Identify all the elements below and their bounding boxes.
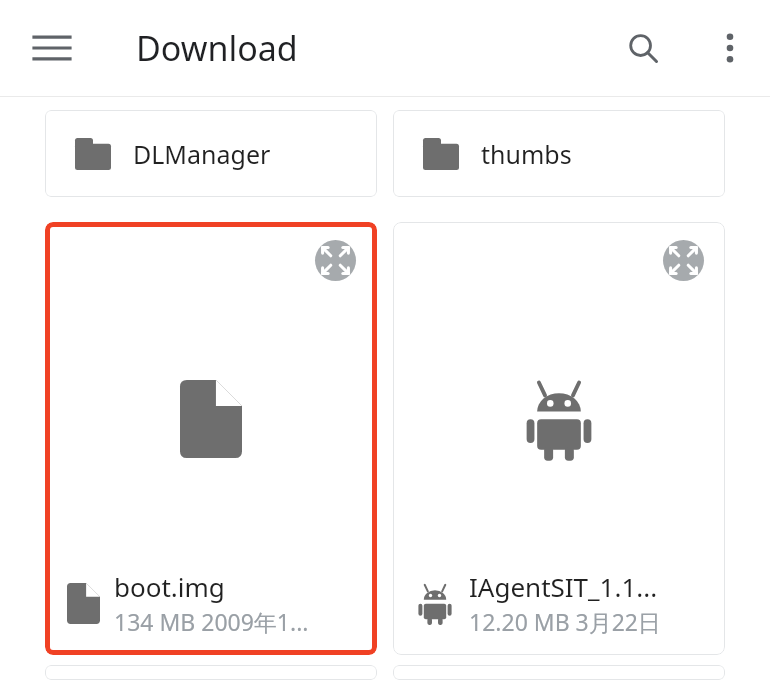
button[interactable]: Search: [612, 17, 674, 79]
button[interactable]: thumbs: [393, 110, 725, 197]
staticText: thumbs: [481, 137, 572, 171]
staticText: boot.img: [114, 569, 225, 604]
button[interactable]: More options: [702, 20, 758, 76]
button[interactable]: Expand preview: [393, 222, 725, 655]
button[interactable]: [45, 665, 377, 680]
staticText: DLManager: [133, 137, 271, 171]
staticText: IAgentSIT_1.1...: [469, 569, 658, 604]
button[interactable]: Expand preview: [45, 222, 377, 655]
button[interactable]: [393, 665, 725, 680]
button[interactable]: Expand preview: [315, 240, 356, 281]
button[interactable]: Open navigation drawer: [22, 18, 82, 78]
staticText: 134 MB 2009年1...: [114, 606, 309, 637]
button[interactable]: Expand preview: [663, 240, 704, 281]
staticText: 12.20 MB 3月22日: [469, 606, 662, 637]
button[interactable]: DLManager: [45, 110, 377, 197]
staticText: Download: [136, 25, 298, 71]
